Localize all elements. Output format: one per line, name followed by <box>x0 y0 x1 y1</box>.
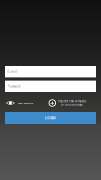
staticText: E-mail <box>7 70 17 74</box>
staticText: Password <box>7 84 20 88</box>
button[interactable]: Register new company <box>49 98 96 107</box>
button[interactable]: LOGIN <box>5 112 96 124</box>
button[interactable]: Show password <box>5 98 33 107</box>
staticText: LOGIN <box>45 116 56 120</box>
staticText: Register new company <box>58 99 86 103</box>
staticText: Show password <box>18 101 33 105</box>
staticText: or confirm e-mail <box>61 103 83 106</box>
